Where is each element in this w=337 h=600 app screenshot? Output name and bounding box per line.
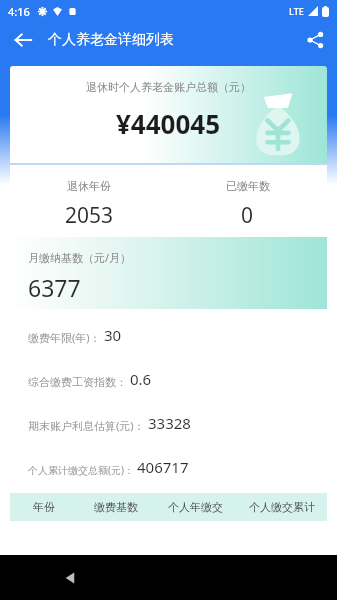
staticText: 退休年份 — [67, 179, 111, 193]
button[interactable]: 月缴纳基数（元/月） — [10, 237, 327, 309]
staticText: 月缴纳基数（元/月） — [28, 250, 132, 265]
staticText: 4:16 — [8, 4, 30, 19]
button[interactable]: Share — [305, 30, 325, 50]
button[interactable]: 退休年份 — [10, 165, 327, 233]
staticText: 个人养老金详细列表 — [48, 31, 174, 49]
staticText: 年份 — [10, 500, 78, 514]
staticText: ¥440045 — [116, 106, 221, 141]
staticText: 0 — [241, 201, 254, 230]
staticText: 30 — [104, 325, 122, 345]
staticText: LTE — [289, 5, 304, 17]
staticText: 综合缴费工资指数： — [28, 375, 127, 389]
staticText: 6377 — [28, 272, 81, 303]
button[interactable]: Back — [12, 29, 34, 51]
staticText: 已缴年数 — [226, 179, 270, 193]
staticText: 个人年缴交 — [154, 500, 237, 514]
staticText: 0.6 — [130, 369, 152, 389]
button[interactable]: 年份 — [10, 493, 327, 521]
staticText: 缴费年限(年)： — [28, 330, 101, 345]
staticText: 个人累计缴交总额(元)： — [28, 463, 134, 477]
staticText: 个人缴交累计 — [237, 500, 327, 514]
staticText: 退休时个人养老金账户总额（元） — [86, 80, 251, 94]
button[interactable]: Back — [62, 569, 80, 587]
staticText: 406717 — [137, 457, 189, 477]
staticText: 期末账户利息估算(元)： — [28, 418, 145, 433]
button[interactable]: 退休时个人养老金账户总额（元） — [10, 66, 327, 163]
staticText: 2053 — [65, 201, 114, 230]
staticText: 33328 — [148, 413, 191, 433]
staticText: 缴费基数 — [78, 500, 154, 514]
